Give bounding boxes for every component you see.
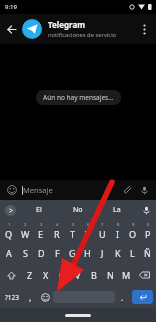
staticText: F [55,247,60,259]
staticText: 9:19 [5,3,17,11]
button[interactable]: S [17,242,33,264]
button[interactable]: More options [134,19,154,39]
staticText: Y [85,228,91,240]
button[interactable]: X [38,264,54,286]
button[interactable]: N [102,264,118,286]
button[interactable]: 9 [125,220,140,242]
button[interactable]: C [54,264,70,286]
button[interactable]: 6 [80,220,95,242]
button[interactable]: Enter [132,290,153,304]
staticText: M [122,269,131,281]
staticText: 9 [132,222,135,228]
staticText: La [113,205,121,215]
button[interactable]: Expand toolbar [0,200,20,220]
staticText: D [38,247,45,259]
button[interactable]: Voice message [137,183,151,197]
staticText: I [116,228,120,240]
button[interactable]: ?123 [1,286,23,308]
staticText: T [70,228,76,240]
button[interactable]: M [118,264,134,286]
button[interactable]: . [115,286,130,308]
staticText: notificaciones de servicio [48,31,117,39]
staticText: S [23,247,28,259]
button[interactable]: Backspace [134,264,155,286]
staticText: O [129,228,137,240]
button[interactable]: El [20,200,58,220]
staticText: N [107,269,114,281]
button[interactable]: 1 [1,220,17,242]
staticText: , [29,292,32,303]
button[interactable]: Back [0,18,22,40]
button[interactable]: J [95,242,110,264]
button[interactable]: Shift [1,264,22,286]
staticText: E [38,228,44,240]
staticText: Q [5,228,13,240]
button[interactable]: Space [53,291,115,303]
staticText: 8 [117,222,120,228]
button[interactable]: Z [22,264,38,286]
staticText: Z [27,269,33,281]
button[interactable]: Emoji [5,183,19,197]
staticText: R [54,228,60,240]
staticText: W [21,228,30,240]
staticText: Aún no hay mensajes... [43,93,114,102]
button[interactable]: Emoji [38,286,53,308]
button[interactable]: 0 [140,220,155,242]
staticText: U [99,228,106,240]
staticText: P [145,228,151,240]
button[interactable]: H [80,242,95,264]
staticText: ?123 [5,293,19,302]
staticText: 2 [24,222,27,228]
button[interactable]: Attach [121,183,135,197]
button[interactable]: 4 [49,220,65,242]
button[interactable]: 8 [110,220,125,242]
staticText: L [130,247,135,259]
staticText: No [73,205,83,215]
button[interactable]: 3 [33,220,49,242]
staticText: 4 [56,222,59,228]
staticText: X [43,269,49,281]
button[interactable]: 5 [65,220,80,242]
staticText: H [84,247,91,259]
button[interactable]: D [33,242,49,264]
button[interactable]: La [97,200,136,220]
staticText: Mensaje [23,185,53,195]
staticText: A [6,247,12,259]
staticText: Telegram [48,19,86,30]
staticText: 5 [72,222,75,228]
staticText: 7 [101,222,104,228]
staticText: 0 [147,222,150,228]
button[interactable]: , [23,286,38,308]
staticText: K [115,247,121,259]
button[interactable]: K [110,242,125,264]
button[interactable]: F [49,242,65,264]
button[interactable]: B [86,264,102,286]
staticText: Ñ [144,247,151,259]
staticText: 1 [8,222,11,228]
staticText: 6 [87,222,90,228]
button[interactable]: No [58,200,97,220]
staticText: G [69,247,76,259]
staticText: J [101,247,104,259]
staticText: . [121,292,124,303]
button[interactable]: V [70,264,86,286]
button[interactable]: G [65,242,80,264]
staticText: V [75,269,81,281]
button[interactable]: Ñ [140,242,155,264]
button[interactable]: Voice input [136,200,156,220]
staticText: El [36,205,42,215]
button[interactable]: 2 [17,220,33,242]
staticText: 3 [40,222,43,228]
staticText: C [59,269,65,281]
button[interactable]: 7 [95,220,110,242]
button[interactable]: A [1,242,17,264]
staticText: B [91,269,97,281]
button[interactable]: L [125,242,140,264]
